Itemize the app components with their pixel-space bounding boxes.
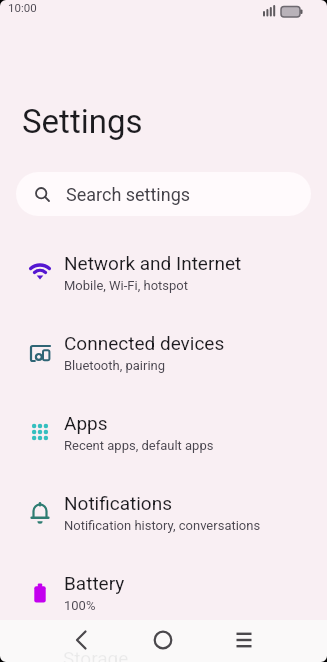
button[interactable]: Connected devices <box>0 312 327 392</box>
staticText: Apps <box>64 412 108 434</box>
staticText: Battery <box>64 572 125 594</box>
staticText: Settings <box>22 102 143 141</box>
staticText: Recent apps, default apps <box>64 438 214 453</box>
staticText: Connected devices <box>64 332 225 354</box>
staticText: Bluetooth, pairing <box>64 358 166 373</box>
button[interactable]: Notifications <box>0 472 327 552</box>
button[interactable] <box>225 621 263 659</box>
button[interactable] <box>62 621 100 659</box>
staticText: 100% <box>64 598 96 613</box>
staticText: 10:00 <box>8 1 37 14</box>
staticText: Notification history, conversations <box>64 518 261 533</box>
button[interactable]: Apps <box>0 392 327 472</box>
staticText: Search settings <box>66 184 191 205</box>
staticText: Mobile, Wi-Fi, hotspot <box>64 278 188 293</box>
button[interactable] <box>144 621 182 659</box>
button[interactable]: Battery <box>0 552 327 632</box>
staticText: Storage <box>63 647 129 662</box>
button[interactable]: Network and Internet <box>0 232 327 312</box>
staticText: Notifications <box>64 492 173 514</box>
button[interactable]: Search settings <box>16 172 311 216</box>
staticText: Network and Internet <box>64 252 242 274</box>
